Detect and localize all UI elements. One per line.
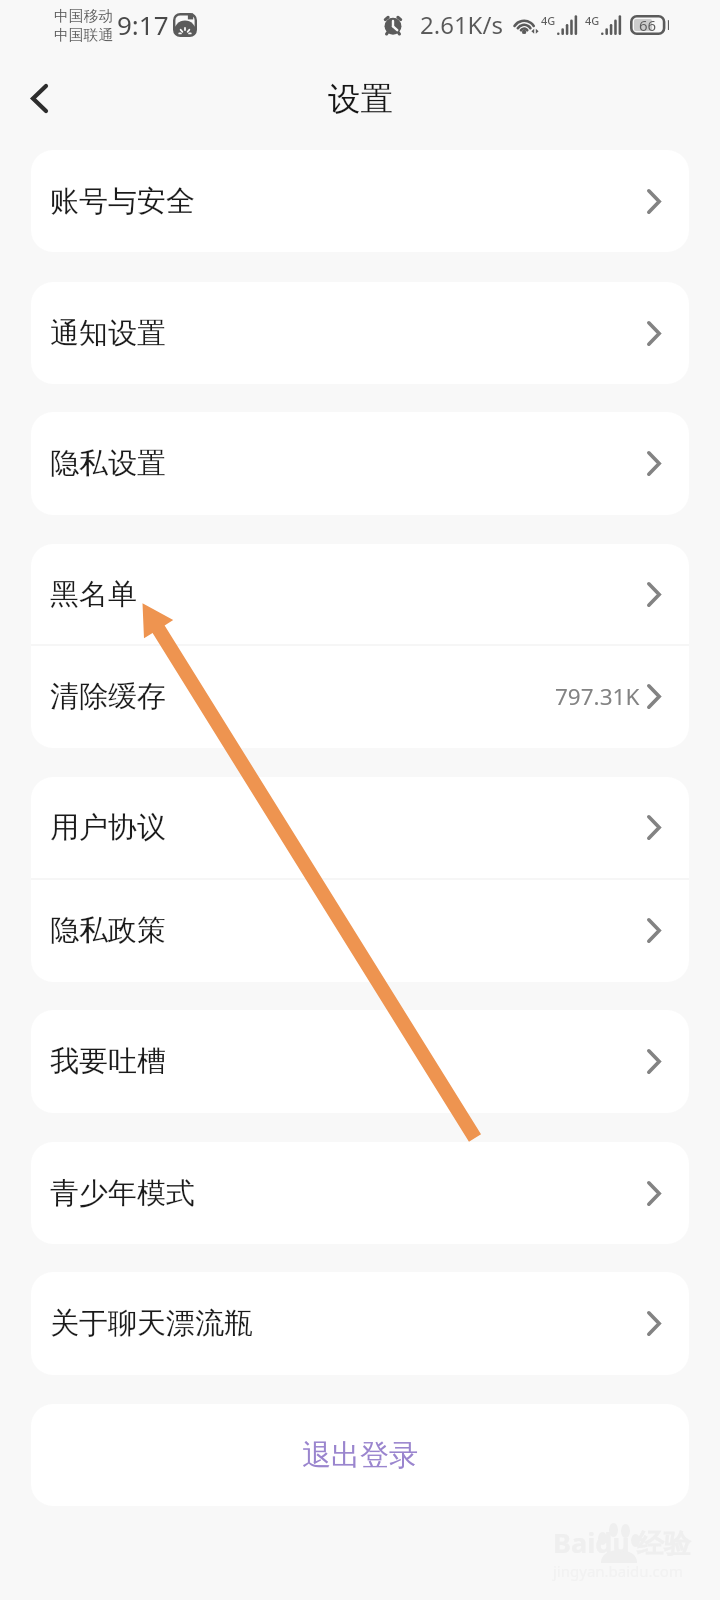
staticText: 2.61K/s	[420, 8, 503, 41]
staticText: 用户协议	[50, 809, 166, 846]
staticText: 关于聊天漂流瓶	[50, 1305, 253, 1342]
button[interactable]: 账号与安全	[31, 150, 689, 252]
staticText: 4G	[585, 13, 600, 28]
button[interactable]: 黑名单	[31, 544, 689, 644]
button[interactable]: 我要吐槽	[31, 1010, 689, 1113]
staticText: 66	[639, 15, 657, 35]
staticText: 设置	[328, 79, 393, 120]
staticText: 中国移动	[54, 7, 114, 26]
staticText: 通知设置	[50, 315, 166, 352]
staticText: 隐私政策	[50, 912, 166, 949]
staticText: 9:17	[117, 7, 169, 42]
button[interactable]: 关于聊天漂流瓶	[31, 1272, 689, 1375]
staticText: 清除缓存	[50, 678, 166, 715]
staticText: Baidu 经验	[553, 1524, 691, 1561]
staticText: 4G	[541, 13, 556, 28]
button[interactable]: 隐私政策	[31, 880, 689, 981]
button[interactable]: 用户协议	[31, 777, 689, 878]
staticText: 我要吐槽	[50, 1043, 166, 1080]
staticText: 青少年模式	[50, 1175, 195, 1212]
button[interactable]: 隐私设置	[31, 412, 689, 515]
button[interactable]: 通知设置	[31, 282, 689, 384]
button[interactable]: Back	[8, 67, 70, 129]
staticText: 中国联通	[54, 26, 114, 45]
staticText: 797.31K	[555, 681, 640, 712]
staticText: 账号与安全	[50, 183, 195, 220]
button[interactable]: 退出登录	[31, 1404, 689, 1506]
button[interactable]: 清除缓存	[31, 646, 689, 747]
staticText: 黑名单	[50, 576, 137, 613]
staticText: 退出登录	[302, 1437, 418, 1474]
staticText: 隐私设置	[50, 445, 166, 482]
button[interactable]: 青少年模式	[31, 1142, 689, 1244]
